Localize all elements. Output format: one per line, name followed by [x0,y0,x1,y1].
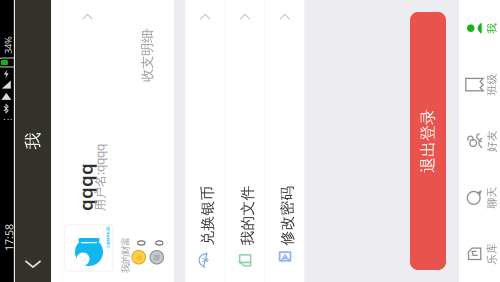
staticText: 我的文件 [145,129,205,147]
staticText: 0 [145,43,151,57]
button[interactable]: CAMPULSE [109,0,391,7]
staticText: 修改密码 [145,169,205,187]
staticText: 兑换银币 [145,90,205,108]
staticText: 0 [145,25,151,39]
button[interactable]: 我的文件 [109,116,391,155]
button[interactable]: ¥ [109,77,391,116]
button[interactable]: 修改密码 [109,156,391,195]
